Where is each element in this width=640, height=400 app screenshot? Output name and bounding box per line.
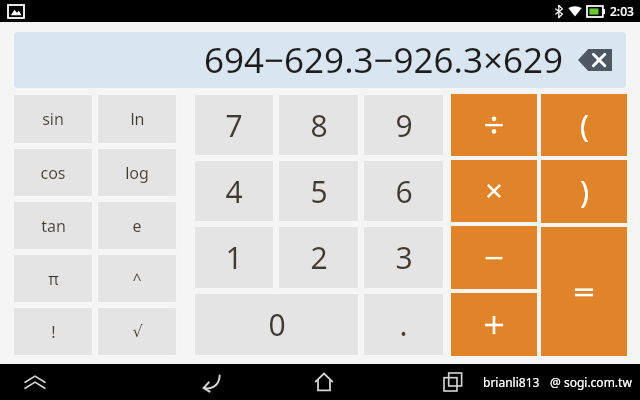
staticText: . <box>399 304 408 345</box>
button[interactable]: 7 <box>194 94 274 156</box>
staticText: 6 <box>395 171 413 212</box>
staticText: sin <box>42 108 64 130</box>
button[interactable]: cos <box>13 148 93 197</box>
staticText: 2 <box>310 237 328 278</box>
staticText: log <box>125 162 149 184</box>
button[interactable]: Divide <box>451 94 537 156</box>
button[interactable]: ! <box>13 307 93 356</box>
staticText: @ sogi.com.tw <box>550 374 632 390</box>
button[interactable]: Equals <box>541 227 627 356</box>
staticText: 4 <box>225 171 243 212</box>
staticText: tan <box>41 215 66 237</box>
button[interactable]: ln <box>97 94 177 144</box>
staticText: 3 <box>395 237 413 278</box>
button[interactable]: ) <box>541 160 627 223</box>
staticText: ) <box>580 171 589 212</box>
staticText: 0 <box>268 304 286 345</box>
staticText: π <box>48 268 59 290</box>
staticText: 694−629.3−926.3×629 <box>204 36 564 84</box>
button[interactable]: tan <box>13 201 93 250</box>
button[interactable]: π <box>13 254 93 303</box>
button[interactable]: √ <box>97 307 177 356</box>
staticText: e <box>132 215 142 237</box>
button[interactable]: 4 <box>194 160 274 222</box>
button[interactable]: 9 <box>363 94 444 156</box>
button[interactable]: sin <box>13 94 93 144</box>
button[interactable]: 3 <box>363 226 444 289</box>
staticText: 5 <box>310 171 328 212</box>
button[interactable]: ^ <box>97 254 177 303</box>
staticText: 9 <box>395 105 413 146</box>
button[interactable]: Minus <box>451 226 537 289</box>
staticText: 8 <box>310 105 328 146</box>
button[interactable]: Back <box>195 365 229 399</box>
button[interactable]: 694−629.3−926.3×629 <box>14 32 626 88</box>
button[interactable]: Plus <box>451 293 537 356</box>
button[interactable]: . <box>363 293 444 356</box>
button[interactable]: 6 <box>363 160 444 222</box>
staticText: ! <box>51 321 56 343</box>
button[interactable]: 8 <box>278 94 359 156</box>
button[interactable]: log <box>97 148 177 197</box>
staticText: ln <box>130 108 145 130</box>
button[interactable]: Multiply <box>451 160 537 222</box>
staticText: brianli813 <box>483 374 540 390</box>
staticText: 1 <box>225 237 243 278</box>
button[interactable]: Backspace <box>578 49 612 71</box>
staticText: cos <box>40 162 66 184</box>
staticText: ( <box>580 105 589 146</box>
button[interactable]: Home <box>307 365 341 399</box>
button[interactable]: 2 <box>278 226 359 289</box>
button[interactable]: Expand <box>20 367 50 397</box>
button[interactable]: 1 <box>194 226 274 289</box>
staticText: 2:03 <box>610 3 634 19</box>
button[interactable]: Recent apps <box>436 365 470 399</box>
button[interactable]: 5 <box>278 160 359 222</box>
button[interactable]: ( <box>541 94 627 156</box>
button[interactable]: 0 <box>194 293 359 356</box>
staticText: ^ <box>132 268 142 290</box>
button[interactable]: e <box>97 201 177 250</box>
staticText: 7 <box>225 105 243 146</box>
staticText: √ <box>132 322 143 341</box>
